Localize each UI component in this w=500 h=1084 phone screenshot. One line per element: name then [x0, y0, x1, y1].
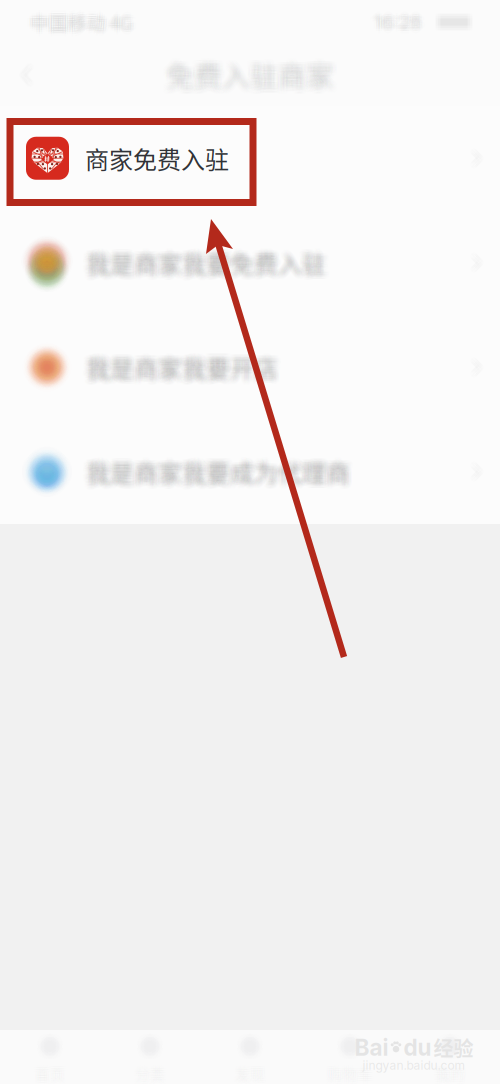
staticText: 我是商家我要成为代理商 [82, 454, 346, 489]
staticText: 我是商家我要开店 [82, 345, 274, 380]
staticText: 我是商家我要成为代理商 [88, 460, 352, 495]
staticText: 我是商家我要成为代理商 [87, 457, 351, 491]
staticText: 我是商家我要成为代理商 [80, 455, 344, 490]
staticText: 我是商家我要开店 [79, 350, 271, 385]
staticText: 我是商家我要开店 [84, 353, 276, 388]
staticText: 我是商家我要开店 [82, 351, 274, 386]
staticText: 我是商家我要成为代理商 [87, 460, 351, 495]
button[interactable]: 商家免费入驻 [0, 106, 500, 210]
button[interactable]: 我的 [400, 1030, 500, 1084]
staticText: 我是商家我要成为代理商 [91, 455, 355, 490]
staticText: 我是商家我要开店 [82, 346, 274, 381]
staticText: 我是商家我要开店 [93, 350, 285, 385]
staticText: 我是商家我要成为代理商 [88, 450, 352, 485]
staticText: 我是商家我要开店 [85, 348, 277, 382]
staticText: 购物车 [329, 1063, 374, 1084]
staticText: 中国移动 4G [32, 6, 135, 33]
staticText: 我是商家我要免费入驻 [87, 245, 327, 280]
staticText: 我是商家我要成为代理商 [80, 453, 344, 488]
staticText: 16:28 [376, 11, 424, 33]
staticText: 免费入驻商家 [160, 48, 328, 89]
staticText: 免费入驻商家 [160, 53, 328, 94]
staticText: 我的 [439, 1063, 469, 1084]
staticText: 我是商家我要开店 [92, 350, 284, 385]
staticText: 我是商家我要开店 [80, 353, 272, 388]
staticText: 16:28 [376, 8, 424, 31]
staticText: 我是商家我要开店 [82, 354, 274, 389]
staticText: 我是商家我要开店 [89, 351, 281, 386]
button[interactable]: 我是商家我要成为代理商 [0, 419, 500, 524]
staticText: 我是商家我要成为代理商 [86, 455, 350, 490]
staticText: 中国移动 4G [28, 8, 131, 35]
staticText: 我是商家我要成为代理商 [86, 451, 350, 486]
staticText: 免费入驻商家 [161, 63, 329, 103]
button[interactable]: 购物车 [300, 1030, 400, 1084]
staticText: 我是商家我要免费入驻 [85, 251, 325, 286]
staticText: 我是商家我要成为代理商 [86, 447, 350, 482]
staticText: 我是商家我要免费入驻 [82, 248, 322, 282]
staticText: 免费入驻商家 [163, 63, 331, 103]
staticText: 我是商家我要开店 [86, 351, 278, 386]
staticText: 免费入驻商家 [164, 63, 332, 103]
staticText: 我是商家我要成为代理商 [81, 452, 345, 487]
staticText: 我是商家我要成为代理商 [81, 455, 345, 490]
staticText: 我是商家我要免费入驻 [91, 248, 331, 282]
staticText: 我是商家我要成为代理商 [82, 453, 346, 488]
staticText: 我是商家我要开店 [80, 350, 272, 385]
staticText: 我是商家我要开店 [84, 345, 276, 380]
staticText: 我是商家我要开店 [82, 349, 274, 383]
staticText: 免费入驻商家 [161, 51, 329, 92]
button[interactable]: 我是商家我要开店 [0, 315, 500, 419]
staticText: 我是商家我要成为代理商 [84, 457, 348, 491]
staticText: 我是商家我要免费入驻 [85, 249, 325, 284]
staticText: 免费入驻商家 [168, 48, 336, 89]
staticText: 我是商家我要免费入驻 [80, 246, 320, 281]
staticText: 我是商家我要开店 [88, 344, 280, 379]
staticText: 我是商家我要开店 [82, 350, 274, 385]
staticText: 中国移动 4G [32, 11, 135, 38]
staticText: 我是商家我要免费入驻 [85, 246, 325, 281]
staticText: 我是商家我要成为代理商 [87, 452, 351, 487]
staticText: 我是商家我要免费入驻 [80, 245, 320, 280]
staticText: 中国移动 4G [28, 11, 131, 38]
button[interactable]: 我是商家我要免费入驻 [0, 210, 500, 315]
staticText: 我是商家我要成为代理商 [91, 457, 355, 491]
staticText: 我是商家我要成为代理商 [92, 454, 356, 489]
staticText: 我是商家我要成为代理商 [89, 455, 353, 490]
staticText: 16:28 [374, 11, 422, 33]
staticText: 我是商家我要免费入驻 [82, 251, 322, 286]
staticText: 我是商家我要成为代理商 [89, 449, 353, 483]
staticText: 我是商家我要成为代理商 [86, 460, 350, 495]
staticText: 我是商家我要开店 [84, 352, 276, 387]
staticText: 我是商家我要成为代理商 [92, 457, 356, 491]
staticText: 免费入驻商家 [172, 59, 340, 100]
staticText: 我是商家我要免费入驻 [85, 245, 325, 280]
staticText: 我是商家我要免费入驻 [87, 240, 327, 274]
staticText: 我是商家我要免费入驻 [93, 245, 333, 280]
staticText: 我是商家我要免费入驻 [89, 243, 329, 278]
staticText: 免费入驻商家 [171, 48, 339, 89]
staticText: 我是商家我要免费入驻 [88, 249, 328, 284]
staticText: 我是商家我要成为代理商 [84, 451, 348, 486]
staticText: 我是商家我要免费入驻 [81, 248, 321, 282]
staticText: 免费入驻商家 [169, 50, 337, 90]
staticText: Bai [354, 1034, 388, 1061]
staticText: 免费入驻商家 [172, 56, 340, 97]
staticText: 免费入驻商家 [166, 58, 334, 98]
staticText: 我是商家我要开店 [88, 350, 280, 385]
staticText: 我是商家我要免费入驻 [82, 244, 322, 279]
